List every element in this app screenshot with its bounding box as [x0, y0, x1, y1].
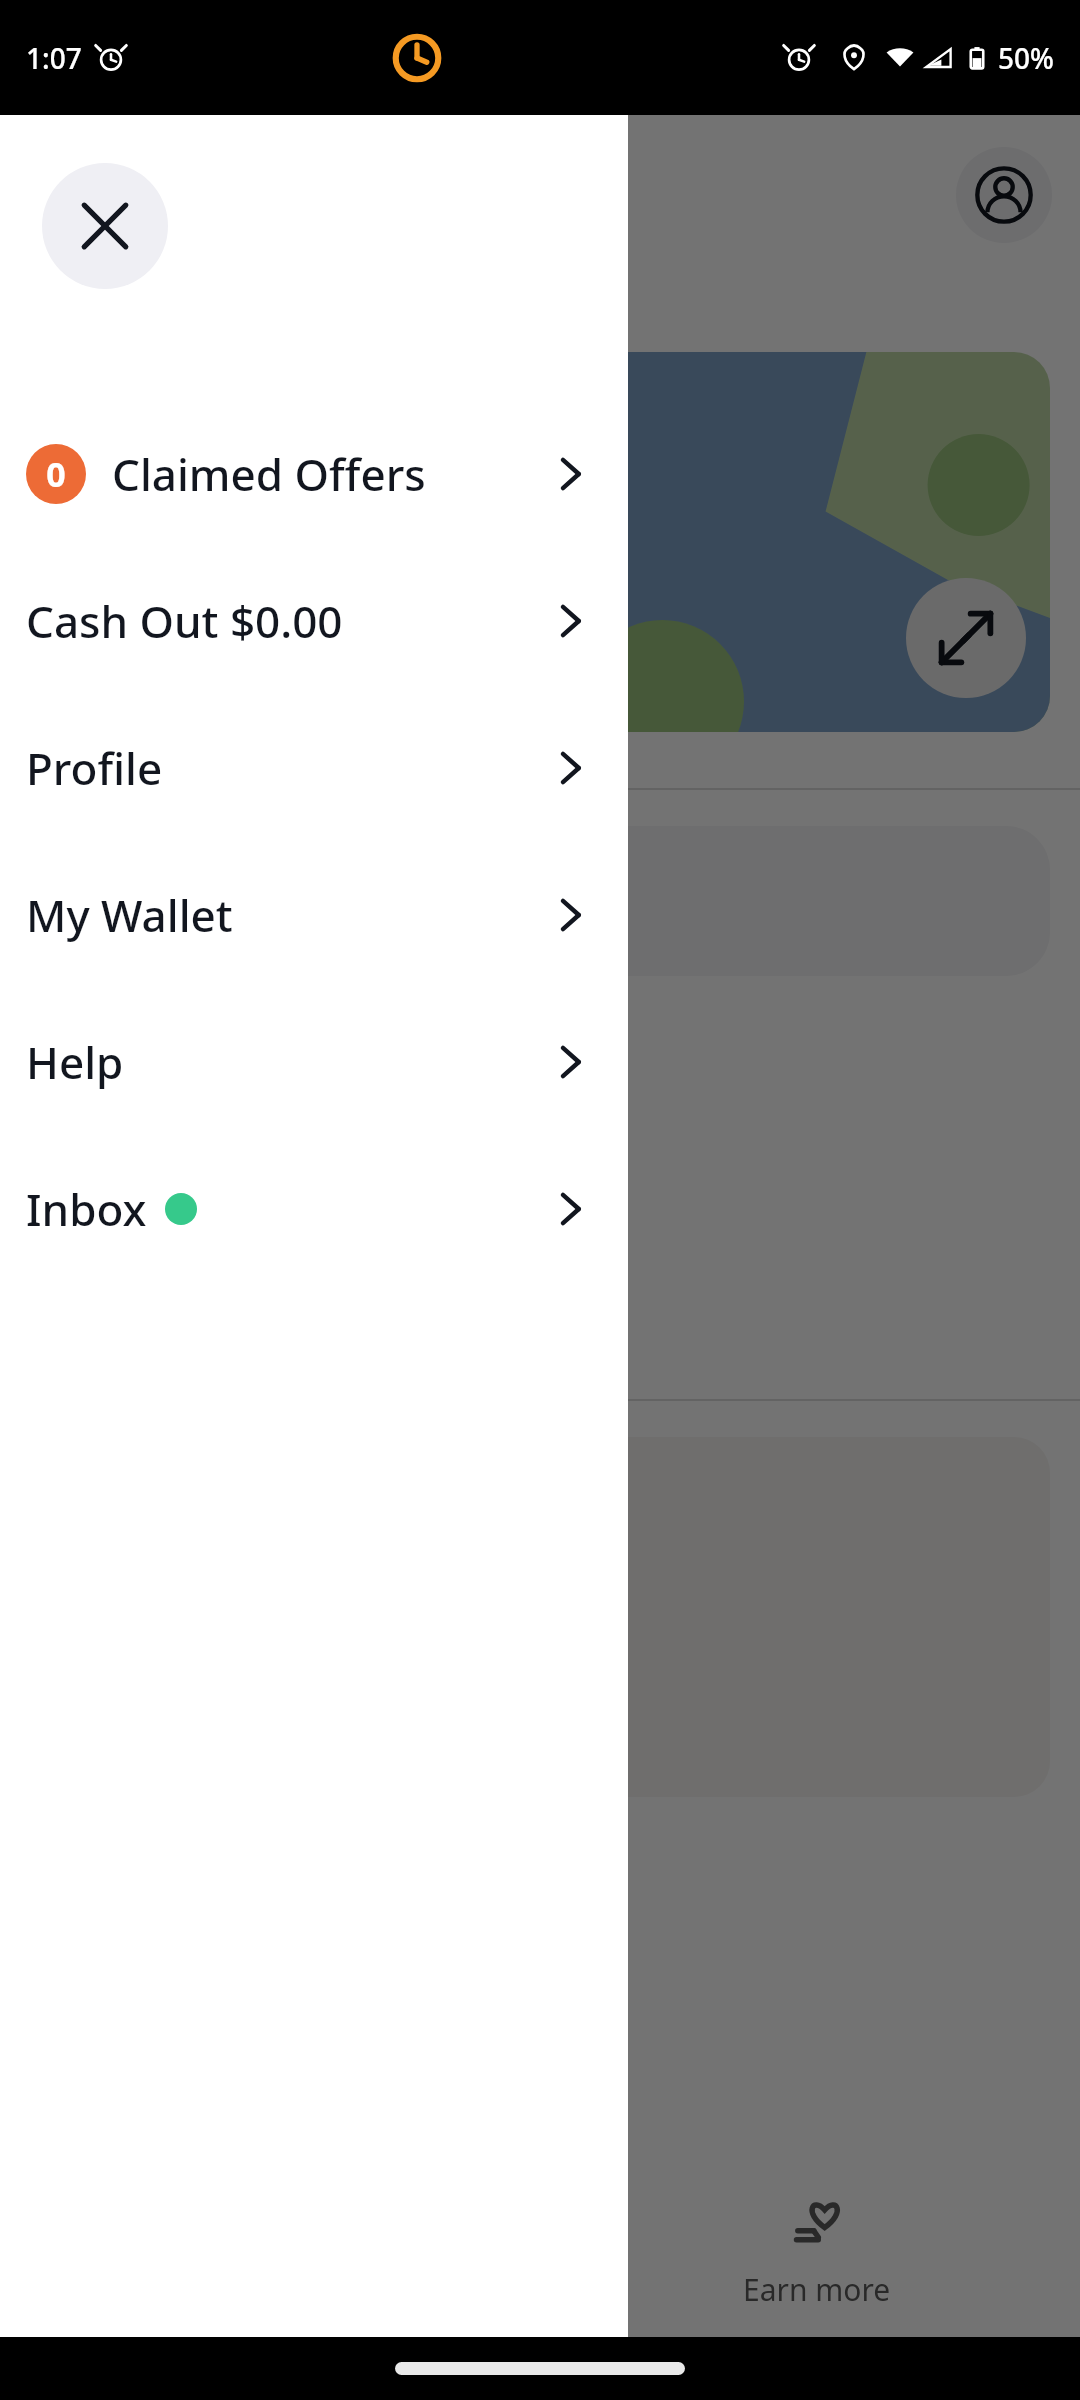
button[interactable]: Help [0, 988, 628, 1135]
button[interactable]: Inbox [0, 1135, 628, 1282]
staticText: 50% [998, 39, 1054, 77]
staticText: 0 [46, 451, 66, 497]
staticText: $2.64 [44, 386, 158, 446]
staticText: Earn more [743, 2269, 891, 2310]
button[interactable]: My Wallet [0, 841, 628, 988]
staticText: Gas prices [36, 265, 270, 328]
staticText: Profile [26, 738, 163, 798]
staticText: Cash Out $0.00 [26, 591, 343, 651]
staticText: 60¢/gal back [44, 446, 251, 492]
staticText: Help [26, 1032, 124, 1092]
staticText: My Wallet [26, 885, 233, 945]
staticText: Offers nearby [36, 1036, 351, 1099]
button[interactable]: Close menu [42, 163, 168, 289]
button[interactable]: 0 [0, 400, 628, 547]
button[interactable]: Profile [0, 694, 628, 841]
button[interactable]: Cash Out $0.00 [0, 547, 628, 694]
staticText: Get a discount in your next offer [70, 878, 586, 924]
staticText: 1:07 [26, 39, 82, 77]
staticText: Claimed Offers [112, 444, 426, 504]
staticText: Inbox [26, 1179, 147, 1239]
